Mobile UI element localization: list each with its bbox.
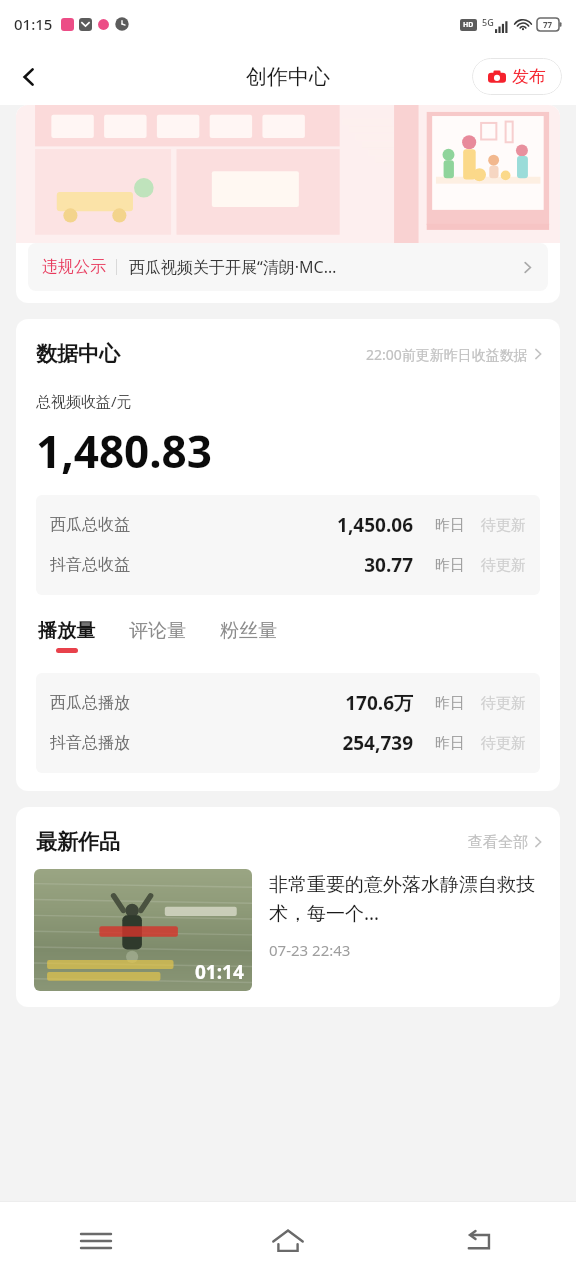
staticText: 抖音总收益 <box>50 555 130 575</box>
staticText: 昨日 <box>435 556 465 575</box>
staticText: 昨日 <box>435 694 465 713</box>
staticText: 西瓜总收益 <box>50 515 130 535</box>
button[interactable]: 评论量 <box>127 617 188 655</box>
button[interactable]: 数据中心 <box>16 319 560 373</box>
staticText: 待更新 <box>481 694 526 713</box>
staticText: 170.6万 <box>130 690 413 716</box>
staticText: 播放量 <box>38 619 95 643</box>
staticText: 总视频收益/元 <box>36 391 132 411</box>
button[interactable]: 发布 <box>472 58 562 95</box>
staticText: 1,450.06 <box>130 512 413 538</box>
button[interactable]: 粉丝量 <box>218 617 279 655</box>
staticText: 22:00前更新昨日收益数据 <box>366 345 528 364</box>
button[interactable]: 西瓜总收益 <box>36 505 540 545</box>
staticText: 5G <box>482 16 494 28</box>
staticText: 07-23 22:43 <box>269 940 351 960</box>
staticText: 01:14 <box>195 959 244 985</box>
staticText: 待更新 <box>481 556 526 575</box>
staticText: 查看全部 <box>468 833 528 852</box>
button[interactable]: Banner <box>16 105 560 243</box>
button[interactable]: 播放量 <box>36 617 97 655</box>
button[interactable]: 最新作品 <box>16 807 560 869</box>
staticText: 昨日 <box>435 734 465 753</box>
button[interactable]: Recent apps <box>0 1202 192 1280</box>
staticText: 30.77 <box>130 552 413 578</box>
staticText: 77 <box>543 19 553 30</box>
button[interactable]: 抖音总收益 <box>36 545 540 585</box>
staticText: 非常重要的意外落水静漂自救技术，每一个… <box>269 873 542 926</box>
staticText: 粉丝量 <box>220 619 277 643</box>
staticText: 抖音总播放 <box>50 733 130 753</box>
button[interactable]: 西瓜总播放 <box>36 683 540 723</box>
staticText: 评论量 <box>129 619 186 643</box>
button[interactable]: Back <box>384 1202 576 1280</box>
staticText: 西瓜总播放 <box>50 693 130 713</box>
staticText: 数据中心 <box>36 341 120 367</box>
staticText: 最新作品 <box>36 829 120 855</box>
staticText: 1,480.83 <box>36 421 212 481</box>
staticText: 昨日 <box>435 516 465 535</box>
staticText: 发布 <box>512 66 546 87</box>
staticText: 创作中心 <box>246 64 330 90</box>
staticText: 254,739 <box>130 730 413 756</box>
staticText: 01:15 <box>14 14 53 34</box>
staticText: 违规公示 <box>42 257 106 277</box>
button[interactable]: 01:14 <box>16 869 560 991</box>
staticText: 待更新 <box>481 734 526 753</box>
button[interactable]: Home <box>192 1202 384 1280</box>
staticText: 西瓜视频关于开展“清朗·MC… <box>129 256 515 278</box>
button[interactable]: 违规公示 <box>28 243 548 291</box>
button[interactable]: 抖音总播放 <box>36 723 540 763</box>
staticText: 待更新 <box>481 516 526 535</box>
button[interactable]: Back <box>6 54 52 100</box>
staticText: HD <box>463 20 474 30</box>
